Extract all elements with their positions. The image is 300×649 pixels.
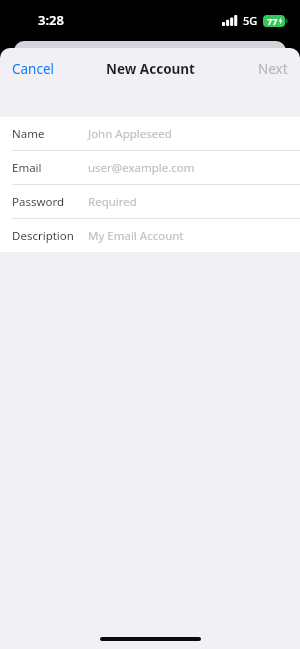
staticText: John Appleseed — [88, 126, 172, 142]
staticText: Cancel — [12, 60, 55, 78]
staticText: 5G — [243, 13, 258, 28]
button[interactable]: Name — [0, 117, 300, 151]
other: Home indicator — [100, 637, 201, 641]
button[interactable]: Email — [0, 151, 300, 185]
staticText: Name — [12, 126, 45, 142]
staticText: Next — [258, 60, 288, 78]
staticText: 77 — [267, 15, 278, 27]
button[interactable]: Description — [0, 219, 300, 252]
staticText: user@example.com — [88, 160, 195, 176]
staticText: Password — [12, 194, 65, 210]
staticText: Email — [12, 160, 42, 176]
staticText: Required — [88, 194, 137, 210]
button[interactable]: Next — [246, 54, 300, 84]
staticText: Description — [12, 228, 74, 244]
staticText: My Email Account — [88, 228, 184, 244]
button[interactable]: Cancel — [0, 54, 67, 84]
button[interactable]: Password — [0, 185, 300, 219]
staticText: New Account — [106, 60, 195, 78]
staticText: 3:28 — [38, 11, 64, 29]
